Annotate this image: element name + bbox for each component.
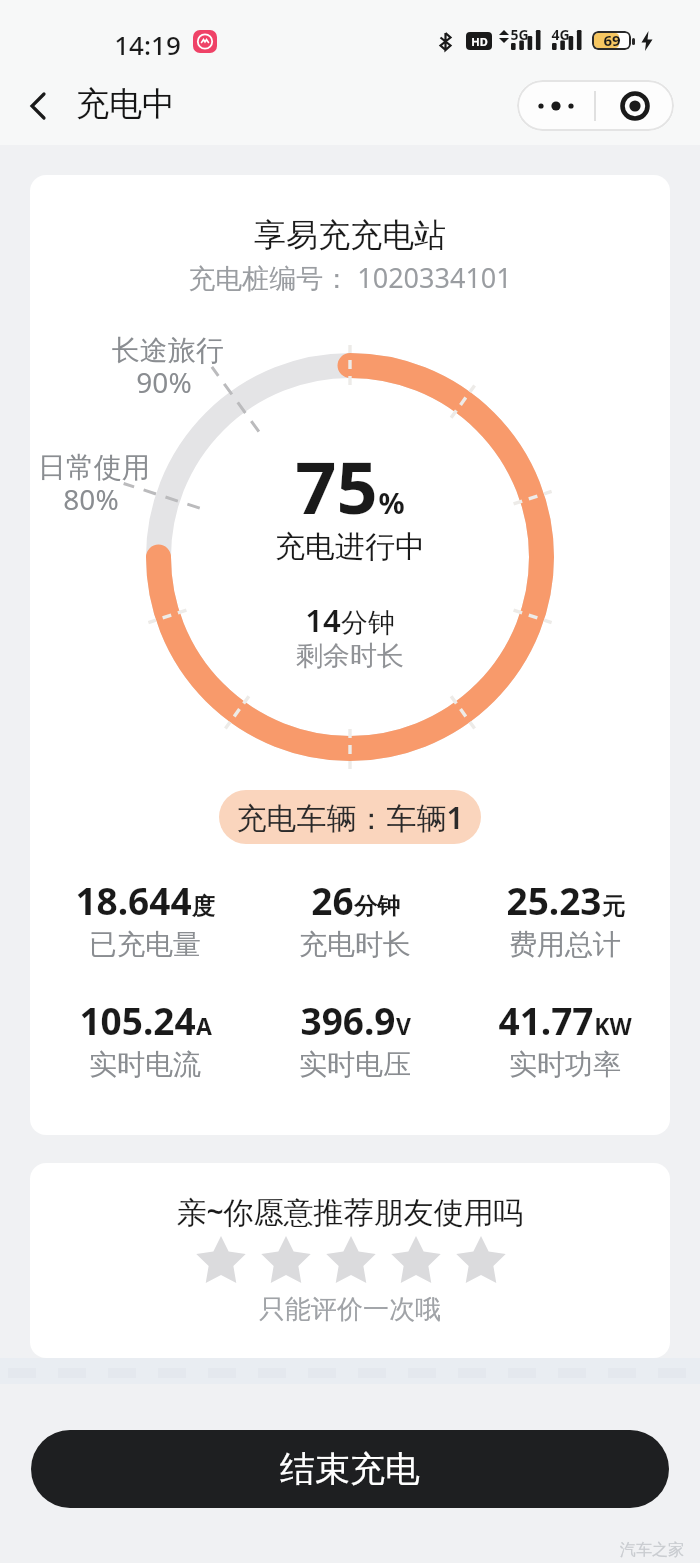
staticText: 充电进行中 xyxy=(275,528,425,566)
staticText: 5G xyxy=(510,25,529,44)
staticText: 日常使用 xyxy=(38,450,150,485)
staticText: 90% xyxy=(136,363,192,401)
button[interactable] xyxy=(318,1233,383,1289)
button[interactable] xyxy=(29,92,47,120)
staticText: 14 xyxy=(305,599,341,641)
staticText: 已充电量 xyxy=(89,927,201,962)
staticText: V xyxy=(396,1010,411,1041)
staticText: 亲~你愿意推荐朋友使用吗 xyxy=(176,1191,524,1232)
staticText: 充电车辆：车辆1 xyxy=(236,797,464,838)
staticText: 分钟 xyxy=(341,606,395,640)
button[interactable] xyxy=(383,1233,448,1289)
button[interactable] xyxy=(596,80,674,131)
staticText: 26 xyxy=(311,875,354,925)
staticText: 度 xyxy=(192,892,215,921)
staticText: 分钟 xyxy=(354,892,400,921)
staticText: 41.77 xyxy=(498,995,594,1045)
staticText: 费用总计 xyxy=(509,927,621,962)
staticText: 实时电流 xyxy=(89,1047,201,1082)
button[interactable] xyxy=(517,80,594,131)
staticText: 14:19 xyxy=(114,27,181,62)
staticText: HD xyxy=(471,34,488,49)
staticText: 充电中 xyxy=(76,83,175,125)
staticText: 充电时长 xyxy=(299,927,411,962)
staticText: 结束充电 xyxy=(280,1447,420,1491)
staticText: 69 xyxy=(603,30,621,50)
staticText: 80% xyxy=(63,480,119,518)
staticText: 25.23 xyxy=(506,875,602,925)
button[interactable] xyxy=(253,1233,318,1289)
staticText: 实时功率 xyxy=(509,1047,621,1082)
button[interactable]: 结束充电 xyxy=(31,1430,669,1508)
staticText: 105.24 xyxy=(79,995,196,1045)
staticText: 汽车之家 xyxy=(620,1540,684,1560)
staticText: % xyxy=(378,483,405,522)
staticText: 元 xyxy=(602,892,625,921)
staticText: 396.9 xyxy=(300,995,396,1045)
staticText: 18.644 xyxy=(75,875,192,925)
button[interactable]: 充电车辆：车辆1 xyxy=(219,790,481,844)
staticText: 长途旅行 xyxy=(112,333,224,368)
staticText: 只能评价一次哦 xyxy=(259,1293,441,1326)
button[interactable] xyxy=(448,1233,513,1289)
staticText: 实时电压 xyxy=(299,1047,411,1082)
staticText: 4G xyxy=(551,25,570,44)
staticText: 享易充充电站 xyxy=(254,215,446,255)
staticText: 充电桩编号： 1020334101 xyxy=(188,259,512,296)
staticText: 剩余时长 xyxy=(296,639,404,673)
staticText: A xyxy=(196,1010,212,1041)
staticText: 75 xyxy=(295,437,378,535)
staticText: KW xyxy=(594,1010,632,1041)
button[interactable] xyxy=(188,1233,253,1289)
